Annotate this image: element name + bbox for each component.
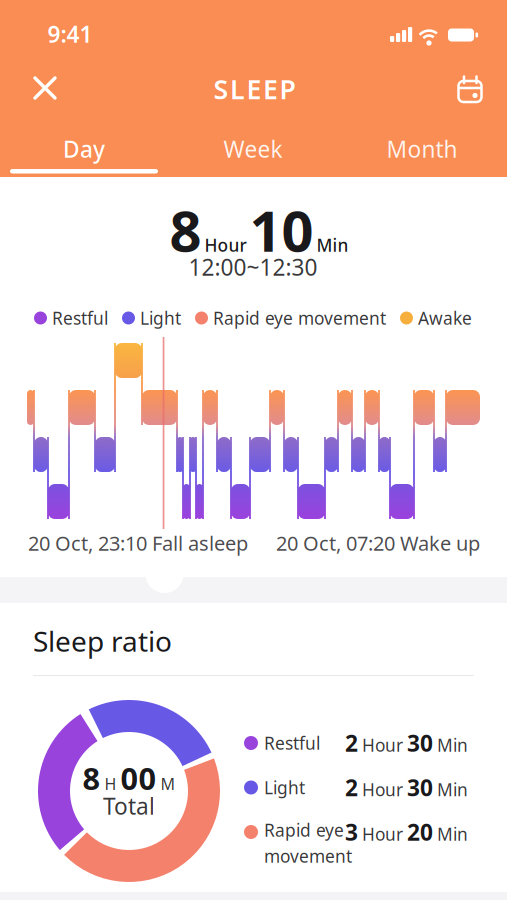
button[interactable]: Close — [33, 76, 57, 100]
staticText: Min — [437, 778, 468, 801]
staticText: Restful — [52, 306, 108, 329]
staticText: Restful — [264, 731, 320, 754]
staticText: Min — [437, 734, 468, 757]
staticText: Rapid eye movement — [213, 306, 386, 329]
staticText: Hour — [362, 734, 403, 757]
button[interactable]: Month — [386, 134, 457, 164]
staticText: 20 Oct, 23:10 Fall asleep — [28, 530, 248, 556]
staticText: Hour — [204, 233, 246, 256]
staticText: Sleep ratio — [33, 622, 172, 660]
staticText: Rapid eye — [264, 818, 344, 841]
staticText: Light — [140, 306, 181, 329]
staticText: Day — [63, 134, 105, 164]
staticText: 2 — [345, 772, 358, 802]
staticText: 12:00~12:30 — [188, 252, 317, 282]
staticText: movement — [264, 844, 352, 867]
staticText: Hour — [362, 778, 403, 801]
staticText: Week — [223, 134, 282, 164]
staticText: 8 — [82, 758, 100, 798]
staticText: SLEEP — [213, 71, 295, 107]
staticText: Awake — [418, 306, 472, 329]
button[interactable]: Day — [63, 134, 105, 164]
staticText: 2 — [345, 728, 358, 758]
staticText: Hour — [362, 823, 403, 846]
staticText: 20 — [407, 817, 433, 847]
staticText: H — [104, 773, 116, 794]
staticText: 10 — [249, 193, 313, 267]
staticText: 00 — [120, 758, 156, 798]
staticText: 3 — [345, 817, 358, 847]
staticText: 20 Oct, 07:20 Wake up — [276, 530, 480, 556]
staticText: 30 — [407, 772, 433, 802]
staticText: Min — [437, 823, 468, 846]
button[interactable]: Week — [223, 134, 282, 164]
staticText: 30 — [407, 728, 433, 758]
staticText: Min — [316, 233, 348, 256]
staticText: M — [160, 773, 175, 794]
staticText: Light — [264, 776, 305, 799]
button[interactable]: Calendar — [457, 75, 483, 103]
staticText: Month — [386, 134, 457, 164]
staticText: 8 — [169, 193, 201, 267]
staticText: Total — [103, 791, 155, 821]
staticText: 9:41 — [47, 19, 92, 49]
